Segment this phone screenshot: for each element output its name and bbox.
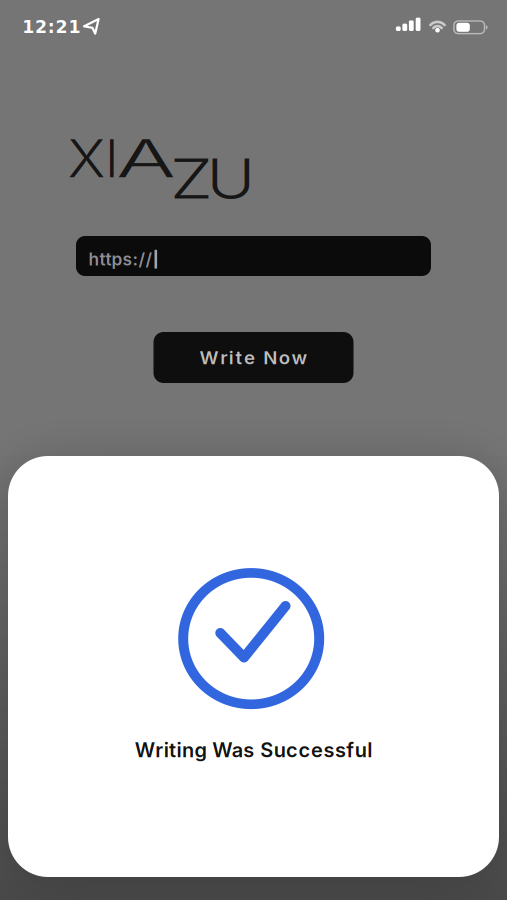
staticText: t [235,346,242,368]
staticText: o [279,346,290,368]
staticText: A [129,128,164,189]
staticText: W [200,346,219,368]
staticText: I [105,128,119,189]
staticText: X [69,128,103,189]
button[interactable]: URL text field [76,236,431,276]
staticText: Writing Was Successful [135,738,372,762]
staticText: N [263,346,277,368]
staticText: 12:21 [22,17,80,37]
staticText: e [244,346,255,368]
staticText: w [291,346,307,368]
staticText: https:// [88,249,152,269]
staticText: U [211,146,251,211]
button[interactable]: W [153,332,353,383]
staticText: i [229,346,234,368]
staticText: Z [174,146,208,211]
staticText: r [220,346,227,368]
